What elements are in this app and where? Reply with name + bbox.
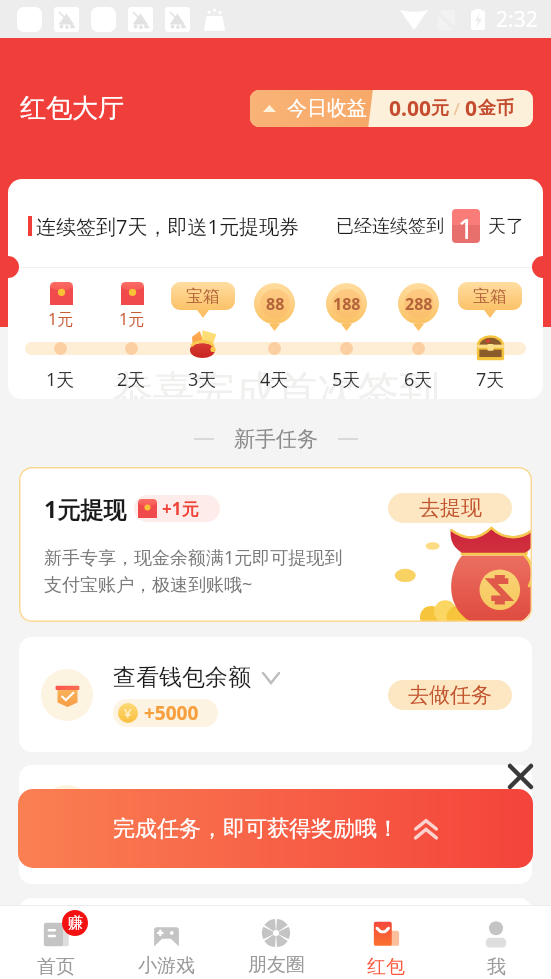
staticText: 完成任务，即可获得奖励哦！ (113, 815, 399, 843)
button[interactable] (19, 898, 532, 979)
staticText: 288 (405, 293, 433, 315)
staticText: 首次阅读文章 (113, 797, 251, 826)
staticText: 0 (465, 94, 478, 123)
staticText: 2天 (117, 367, 146, 392)
button[interactable]: 查看钱包余额 (19, 637, 532, 752)
staticText: 宝箱 (473, 286, 507, 307)
staticText: 7天 (476, 367, 505, 392)
staticText: 元 (431, 97, 449, 120)
button[interactable]: 去提现 (388, 493, 512, 523)
staticText: +1元 (162, 497, 199, 520)
staticText: 2:32 (496, 5, 538, 34)
staticText: 1 (458, 209, 475, 243)
staticText: 188 (333, 293, 361, 315)
staticText: 恭喜完成首次签到 (112, 366, 440, 399)
staticText: 去提现 (419, 495, 482, 521)
staticText: 5天 (332, 367, 361, 392)
staticText: 首页 (37, 955, 75, 979)
staticText: ¥ (124, 704, 132, 722)
button[interactable]: 首次阅读文章 (19, 765, 532, 884)
staticText: 今日收益 (287, 96, 367, 121)
button[interactable]: 完成任务，即可获得奖励哦！ (18, 789, 533, 868)
staticText: 3天 (188, 367, 217, 392)
staticText: +5000 (144, 700, 199, 726)
staticText: 连续签到7天，即送1元提现券 (36, 213, 299, 240)
staticText: 88 (266, 293, 285, 315)
button[interactable]: 小游戏 (111, 905, 221, 979)
button[interactable]: 去做任务 (388, 680, 512, 710)
staticText: 1元提现 (44, 493, 127, 524)
button[interactable]: 赚 (0, 905, 111, 979)
staticText: 赚 (68, 914, 83, 933)
staticText: 已经连续签到 (336, 215, 444, 238)
staticText: 1元 (119, 308, 145, 330)
button[interactable]: 我 (441, 905, 551, 979)
button[interactable]: 1元提现 (19, 467, 532, 622)
staticText: 新手专享，现金余额满1元即可提现到 支付宝账户，极速到账哦~ (44, 545, 343, 597)
staticText: 红包 (367, 955, 405, 979)
staticText: 去做任务 (408, 682, 492, 708)
staticText: 4天 (260, 367, 289, 392)
staticText: 宝箱 (186, 286, 220, 307)
button[interactable]: 红包 (331, 905, 441, 979)
staticText: / (449, 97, 465, 120)
button[interactable]: 今日收益 (250, 90, 533, 127)
staticText: 0.00 (389, 94, 431, 123)
staticText: 我 (487, 955, 506, 979)
staticText: 新手任务 (234, 426, 318, 452)
staticText: 天了 (488, 215, 524, 238)
staticText: 朋友圈 (248, 953, 305, 977)
staticText: 查看钱包余额 (113, 663, 251, 692)
staticText: 小游戏 (138, 954, 195, 978)
staticText: 6天 (404, 367, 433, 392)
button[interactable]: 朋友圈 (221, 905, 331, 979)
button[interactable]: Close (503, 759, 537, 793)
staticText: 1天 (46, 367, 75, 392)
staticText: 1元 (48, 308, 74, 330)
staticText: 红包大厅 (20, 92, 124, 125)
staticText: 金币 (478, 97, 514, 120)
